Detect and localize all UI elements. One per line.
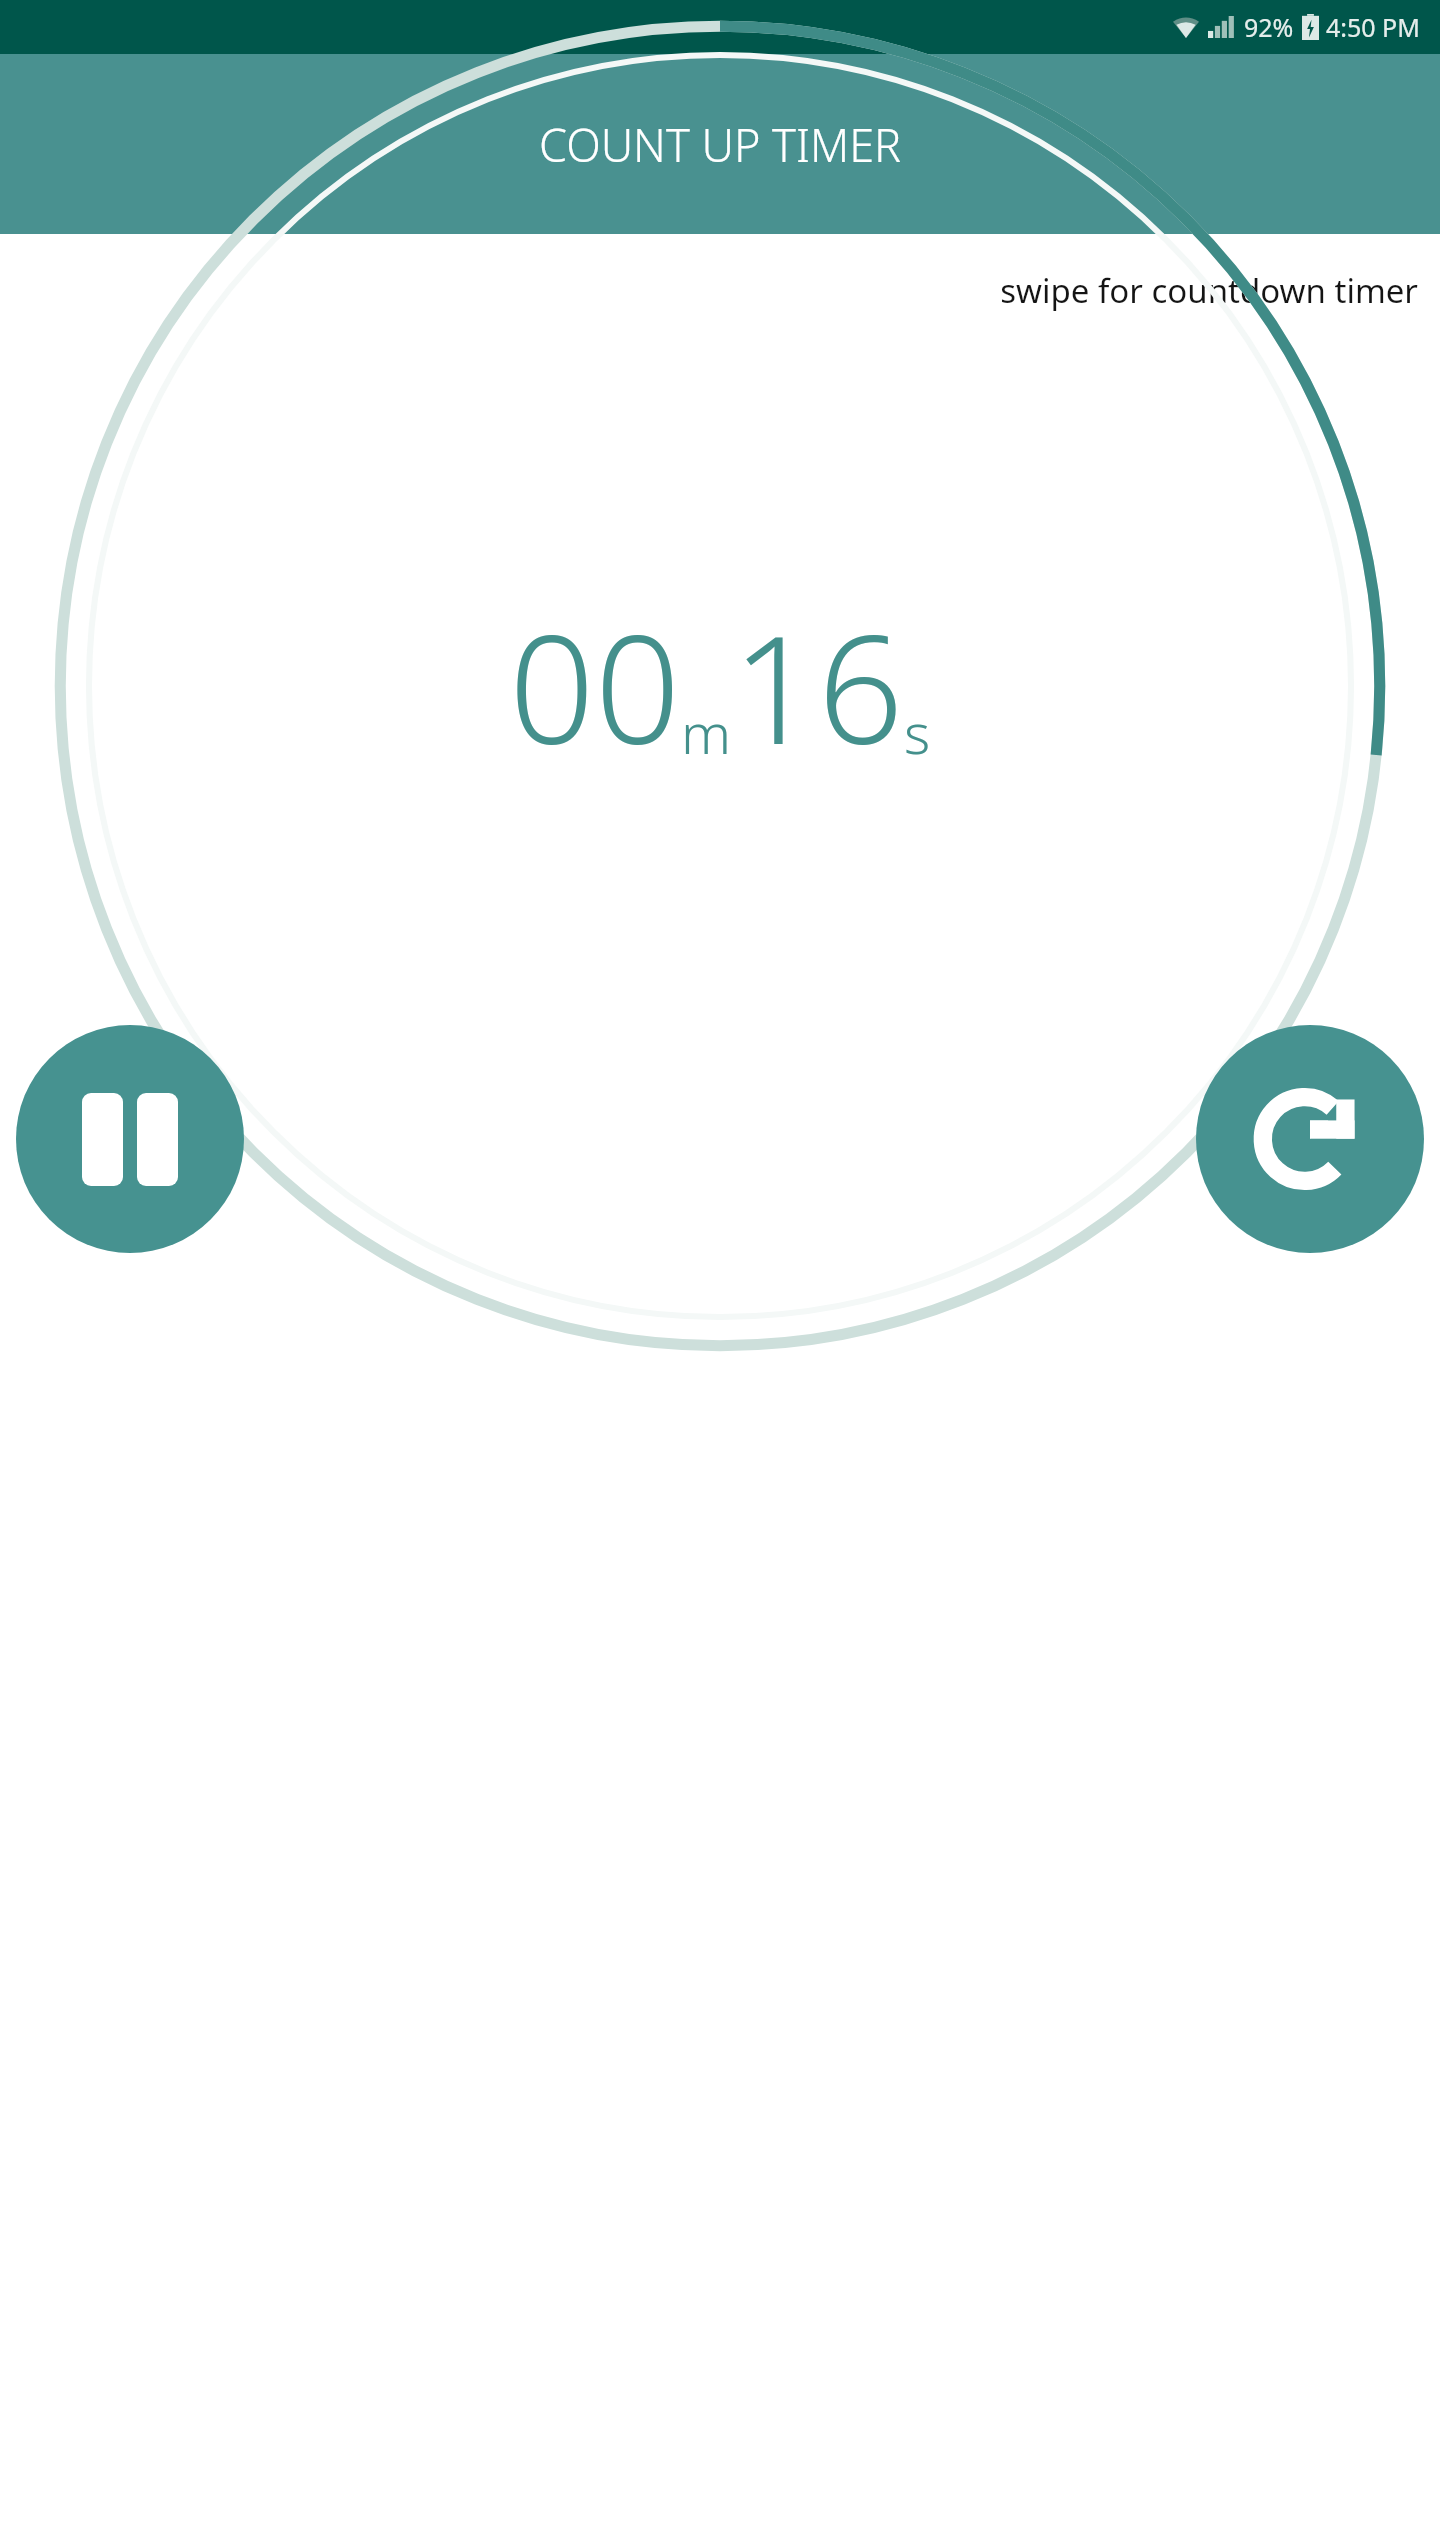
staticText: COUNT UP TIMER <box>539 114 902 175</box>
staticText: m <box>681 694 732 770</box>
staticText: 16 <box>732 584 904 788</box>
staticText: 00 <box>509 584 681 788</box>
staticText: 4:50 PM <box>1326 10 1420 44</box>
button[interactable]: Pause <box>16 1025 244 1253</box>
staticText: swipe for countdown timer <box>1000 268 1418 313</box>
button[interactable]: Reset <box>1196 1025 1424 1253</box>
staticText: s <box>904 694 931 770</box>
staticText: 92% <box>1244 10 1294 44</box>
